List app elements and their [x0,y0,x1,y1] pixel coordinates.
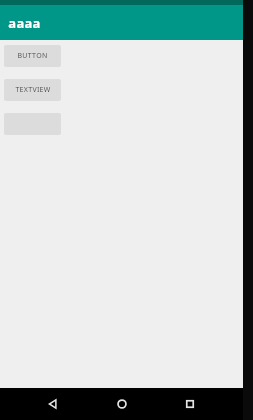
staticText: TEXTVIEW [15,85,51,95]
staticText: aaaa [8,14,41,32]
button[interactable]: Back [37,388,69,420]
button[interactable]: TEXTVIEW [4,79,61,101]
button[interactable]: BUTTON [4,45,61,67]
button[interactable]: Recent apps [174,388,206,420]
staticText: BUTTON [17,51,48,61]
button[interactable]: Home [106,388,138,420]
